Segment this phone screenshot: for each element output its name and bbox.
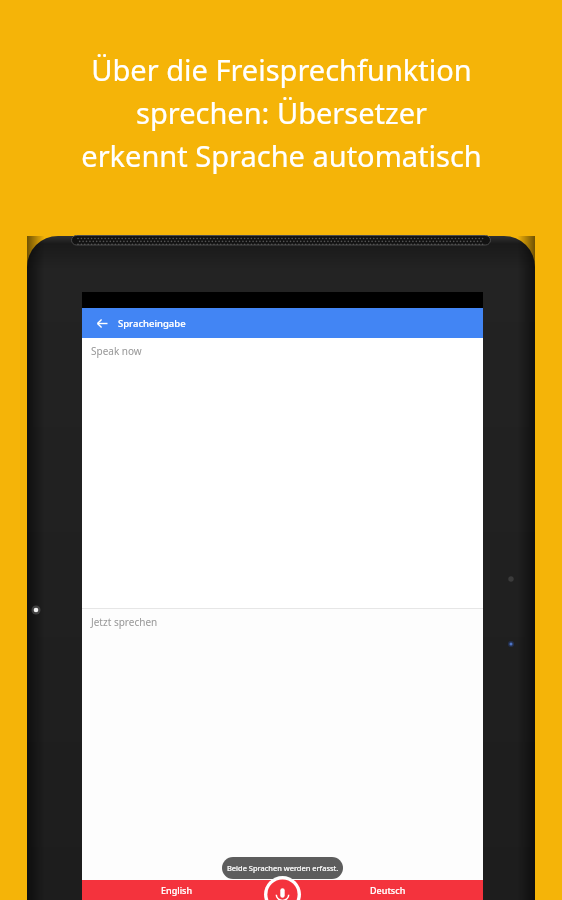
staticText: English: [161, 884, 193, 896]
button[interactable]: Jetzt sprechen: [82, 609, 483, 900]
staticText: Jetzt sprechen: [91, 615, 158, 629]
staticText: Speak now: [91, 344, 142, 358]
button[interactable]: Deutsch: [293, 880, 483, 900]
staticText: Beide Sprachen werden erfasst.: [227, 863, 339, 873]
staticText: Spracheingabe: [118, 317, 186, 330]
button[interactable]: Microphone: [264, 876, 301, 900]
button[interactable]: English: [82, 880, 272, 900]
button[interactable]: Beide Sprachen werden erfasst.: [222, 857, 343, 879]
staticText: Über die Freisprechfunktion sprechen: Üb…: [81, 50, 482, 175]
staticText: Deutsch: [370, 884, 406, 896]
button[interactable]: Back: [93, 314, 111, 332]
button[interactable]: Back: [82, 308, 483, 338]
